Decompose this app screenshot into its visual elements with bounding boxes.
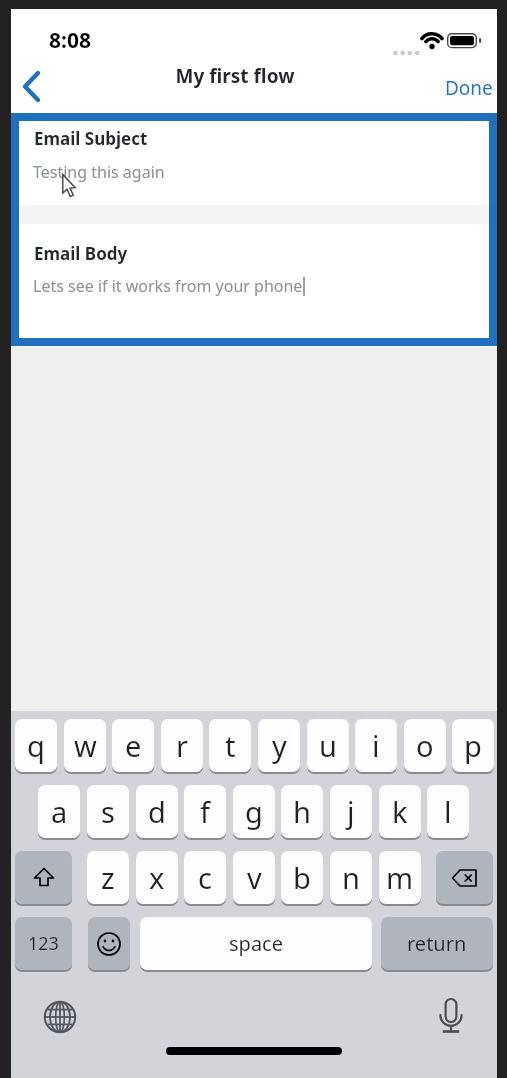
button[interactable]: p	[452, 719, 494, 772]
button[interactable]: j	[330, 785, 372, 838]
button[interactable]	[43, 1000, 77, 1034]
button[interactable]	[15, 851, 72, 904]
button[interactable]: g	[233, 785, 275, 838]
staticText: Done	[445, 75, 493, 101]
staticText: return	[407, 930, 467, 957]
staticText: q	[27, 726, 45, 765]
button[interactable]: n	[330, 851, 372, 904]
button[interactable]: t	[209, 719, 251, 772]
staticText: m	[386, 858, 414, 897]
staticText: h	[293, 792, 311, 831]
staticText: a	[51, 792, 68, 831]
staticText: i	[372, 726, 380, 765]
staticText: e	[125, 726, 142, 765]
button[interactable]: d	[136, 785, 178, 838]
staticText: k	[392, 792, 408, 831]
button[interactable]	[88, 917, 130, 970]
staticText: f	[200, 792, 210, 831]
button[interactable]: k	[379, 785, 421, 838]
button[interactable]	[21, 71, 45, 111]
staticText: v	[247, 858, 262, 897]
staticText: t	[225, 726, 236, 765]
staticText: Lets see if it works from your phone	[33, 275, 303, 297]
staticText: z	[101, 858, 115, 897]
staticText: s	[101, 792, 115, 831]
button[interactable]	[436, 851, 493, 904]
button[interactable]: y	[258, 719, 300, 772]
staticText: u	[319, 726, 337, 765]
staticText: b	[293, 858, 311, 897]
button[interactable]: z	[87, 851, 129, 904]
button[interactable]	[19, 224, 489, 338]
staticText: n	[342, 858, 360, 897]
staticText: Email Body	[34, 242, 128, 265]
button[interactable]	[440, 997, 468, 1043]
staticText: space	[229, 930, 283, 957]
staticText: g	[245, 792, 263, 831]
staticText: Testing this again	[33, 161, 165, 183]
button[interactable]: h	[281, 785, 323, 838]
button[interactable]: Done	[441, 67, 497, 101]
staticText: y	[272, 726, 287, 765]
staticText: 123	[28, 931, 59, 956]
button[interactable]: q	[15, 719, 57, 772]
staticText: p	[464, 726, 482, 765]
staticText: d	[148, 792, 166, 831]
staticText: x	[149, 858, 165, 897]
staticText: My first flow	[115, 63, 355, 93]
button[interactable]	[19, 121, 489, 205]
button[interactable]: v	[233, 851, 275, 904]
button[interactable]: b	[281, 851, 323, 904]
button[interactable]: e	[112, 719, 154, 772]
button[interactable]: i	[355, 719, 397, 772]
button[interactable]: x	[136, 851, 178, 904]
button[interactable]: m	[379, 851, 421, 904]
button[interactable]: 123	[15, 917, 72, 970]
button[interactable]: return	[381, 917, 493, 970]
button[interactable]: o	[404, 719, 446, 772]
staticText: Email Subject	[34, 127, 148, 150]
staticText: o	[416, 726, 434, 765]
button[interactable]: r	[161, 719, 203, 772]
button[interactable]: u	[307, 719, 349, 772]
button[interactable]: l	[427, 785, 469, 838]
staticText: c	[198, 858, 212, 897]
button[interactable]: space	[140, 917, 372, 970]
staticText: r	[176, 726, 188, 765]
button[interactable]: c	[184, 851, 226, 904]
staticText: w	[74, 726, 97, 765]
staticText: 8:08	[37, 26, 103, 60]
staticText: j	[347, 792, 355, 831]
button[interactable]: w	[64, 719, 106, 772]
button[interactable]: s	[87, 785, 129, 838]
button[interactable]: a	[38, 785, 80, 838]
button[interactable]: f	[184, 785, 226, 838]
staticText: l	[444, 792, 452, 831]
